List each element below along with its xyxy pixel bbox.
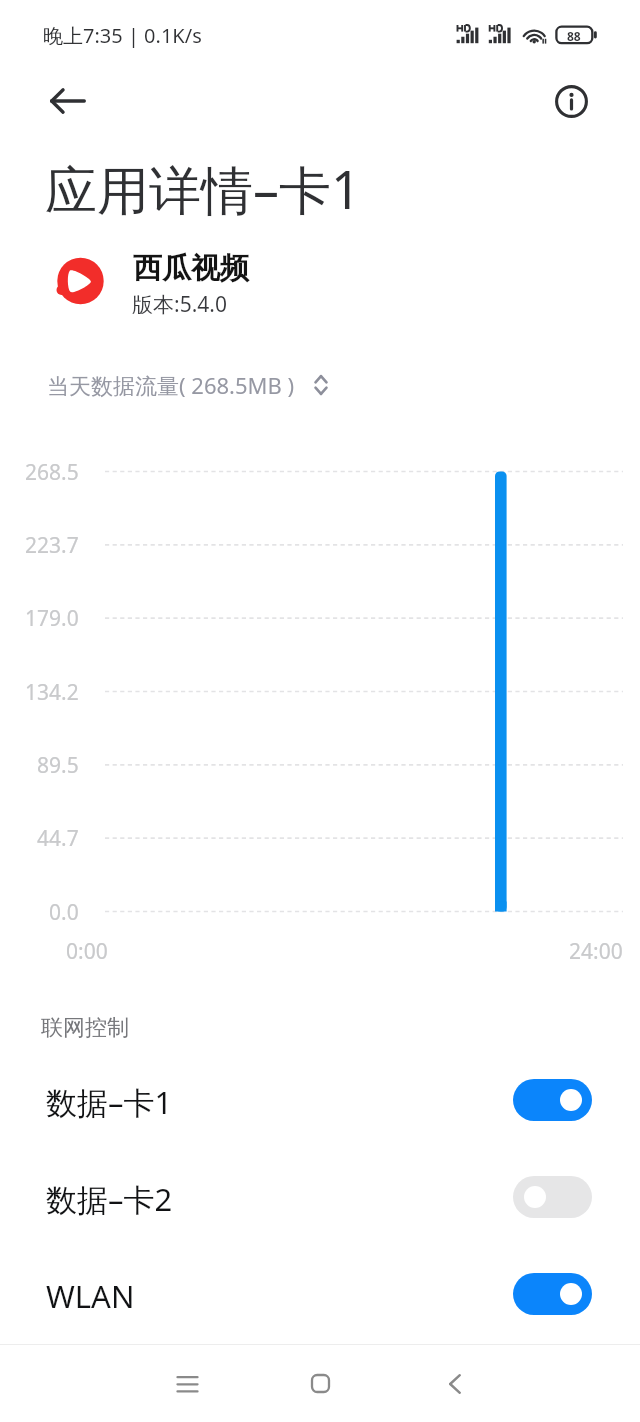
- staticText: 24:00: [569, 937, 623, 966]
- button[interactable]: [45, 247, 117, 319]
- staticText: 89.5: [37, 751, 79, 779]
- staticText: 223.7: [25, 531, 79, 559]
- staticText: 版本:5.4.0: [132, 290, 227, 319]
- staticText: 数据–卡1: [46, 1081, 173, 1123]
- button[interactable]: 当天数据流量( 268.5MB ): [40, 364, 340, 406]
- button[interactable]: Back: [416, 1345, 493, 1422]
- staticText: 0.0: [49, 898, 79, 926]
- staticText: 当天数据流量( 268.5MB ): [47, 370, 295, 400]
- staticText: 数据–卡2: [46, 1178, 173, 1220]
- staticText: 268.5: [25, 458, 79, 486]
- staticText: 44.7: [37, 824, 79, 852]
- staticText: WLAN: [46, 1275, 135, 1317]
- button[interactable]: Info: [541, 71, 601, 131]
- button[interactable]: 数据–卡1: [0, 1052, 640, 1148]
- button[interactable]: Home: [282, 1345, 359, 1422]
- staticText: 联网控制: [41, 1014, 129, 1042]
- staticText: 西瓜视频: [133, 250, 249, 287]
- button[interactable]: WLAN: [0, 1246, 640, 1342]
- staticText: 晚上7:35 | 0.1K/s: [43, 22, 202, 49]
- staticText: 134.2: [25, 678, 79, 706]
- button[interactable]: 数据–卡2: [0, 1149, 640, 1245]
- button[interactable]: Recent apps: [149, 1345, 226, 1422]
- staticText: 88: [567, 28, 581, 44]
- button[interactable]: Back: [34, 67, 102, 135]
- staticText: 应用详情–卡1: [45, 153, 361, 224]
- staticText: 0:00: [66, 937, 108, 966]
- staticText: 179.0: [25, 604, 79, 632]
